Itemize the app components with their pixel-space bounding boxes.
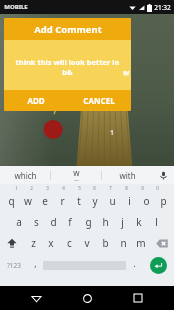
button[interactable]: Voice input <box>152 166 174 184</box>
staticText: u <box>109 194 116 208</box>
button[interactable]: CANCEL <box>67 90 131 111</box>
button[interactable]: h <box>98 213 112 231</box>
button[interactable]: v <box>78 232 96 254</box>
staticText: t <box>77 194 81 208</box>
button[interactable]: s <box>29 213 43 231</box>
button[interactable]: Recents <box>123 286 153 310</box>
button[interactable]: o <box>139 192 153 210</box>
staticText: n <box>120 236 127 250</box>
staticText: s <box>34 215 39 229</box>
staticText: f <box>68 215 72 229</box>
staticText: p <box>160 194 167 208</box>
staticText: 5 <box>78 185 81 191</box>
staticText: 7 <box>109 185 112 191</box>
button[interactable]: g <box>81 213 95 231</box>
button[interactable]: i <box>122 192 136 210</box>
staticText: o <box>143 194 150 208</box>
staticText: w <box>73 167 80 178</box>
staticText: g <box>85 215 92 229</box>
staticText: w <box>24 194 32 208</box>
staticText: with <box>119 170 136 181</box>
staticText: 1 <box>15 185 18 191</box>
staticText: 3 <box>46 185 49 191</box>
button[interactable]: f <box>63 213 77 231</box>
button[interactable]: e <box>38 192 52 210</box>
staticText: b <box>102 236 109 250</box>
staticText: 21:32 <box>154 3 171 12</box>
button[interactable]: w <box>21 192 35 210</box>
button[interactable]: b <box>96 232 114 254</box>
staticText: a <box>16 215 22 229</box>
button[interactable]: d <box>46 213 60 231</box>
staticText: CANCEL <box>83 95 115 106</box>
staticText: 8 <box>125 185 128 191</box>
button[interactable]: ADD <box>4 90 67 111</box>
button[interactable]: think this will look better in b& <box>4 40 131 90</box>
button[interactable]: z <box>24 232 42 254</box>
staticText: l <box>155 215 158 229</box>
staticText: 6 <box>93 185 96 191</box>
button[interactable]: ?123 <box>0 254 27 276</box>
staticText: c <box>67 236 72 250</box>
staticText: h <box>102 215 109 229</box>
staticText: y <box>92 194 98 208</box>
button[interactable]: with <box>102 166 152 184</box>
staticText: e <box>42 194 48 208</box>
button[interactable]: Enter <box>142 254 174 276</box>
button[interactable]: n <box>114 232 132 254</box>
staticText: k <box>136 215 142 229</box>
staticText: x <box>48 236 54 250</box>
staticText: q <box>8 194 15 208</box>
button[interactable]: which <box>0 166 50 184</box>
staticText: think this will look better in b& <box>12 57 123 77</box>
staticText: ADD <box>27 95 45 106</box>
button[interactable]: c <box>60 232 78 254</box>
staticText: v <box>84 236 90 250</box>
staticText: which <box>14 170 37 181</box>
button[interactable]: t <box>72 192 86 210</box>
button[interactable]: y <box>88 192 102 210</box>
button[interactable]: p <box>156 192 170 210</box>
button[interactable]: m <box>132 232 150 254</box>
button[interactable]: u <box>105 192 119 210</box>
staticText: , <box>34 257 37 269</box>
button[interactable]: Back <box>21 286 51 310</box>
staticText: ?123 <box>7 261 21 270</box>
staticText: MOBILE <box>4 3 28 11</box>
staticText: . <box>133 257 136 269</box>
button[interactable]: k <box>132 213 146 231</box>
button[interactable]: . <box>126 254 142 276</box>
button[interactable]: Backspace <box>150 232 174 254</box>
button[interactable]: q <box>4 192 18 210</box>
button[interactable]: Shift <box>0 232 24 254</box>
staticText: 1 <box>50 128 174 166</box>
button[interactable]: , <box>27 254 43 276</box>
button[interactable]: Home <box>72 286 102 310</box>
staticText: r <box>60 194 65 208</box>
staticText: j <box>121 215 124 229</box>
button[interactable]: l <box>149 213 163 231</box>
staticText: 4 <box>62 185 65 191</box>
staticText: d <box>50 215 57 229</box>
staticText: 0 <box>156 185 159 191</box>
staticText: z <box>31 236 36 250</box>
staticText: i <box>128 194 131 208</box>
button[interactable]: r <box>55 192 69 210</box>
staticText: m <box>136 236 146 250</box>
button[interactable]: w <box>51 166 101 184</box>
button[interactable]: a <box>12 213 26 231</box>
staticText: 2 <box>30 185 33 191</box>
button[interactable]: j <box>115 213 129 231</box>
staticText: ••• <box>74 178 79 183</box>
staticText: 9 <box>141 185 144 191</box>
button[interactable]: x <box>42 232 60 254</box>
staticText: Add Comment <box>34 23 102 36</box>
